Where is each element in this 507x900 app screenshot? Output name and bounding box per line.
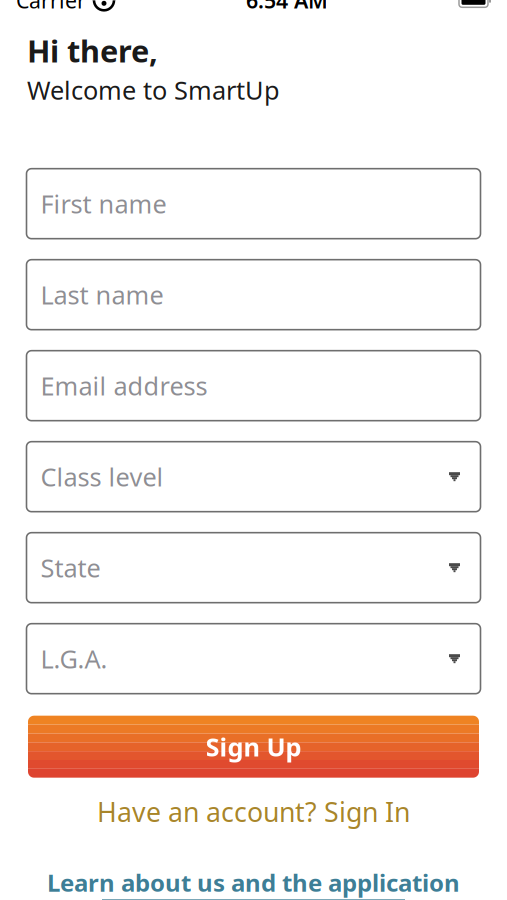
staticText: State — [40, 551, 100, 584]
staticText: Learn about us and the application — [47, 866, 460, 898]
staticText: Sign Up — [205, 730, 301, 763]
button[interactable]: State — [26, 533, 480, 603]
button[interactable]: Sign Up — [28, 716, 479, 778]
staticText: Welcome to SmartUp — [27, 73, 280, 107]
staticText: L.G.A. — [40, 642, 107, 675]
staticText: Have an account? Sign In — [97, 794, 410, 829]
button[interactable]: Class level — [26, 442, 480, 512]
staticText: Class level — [40, 460, 163, 493]
staticText: Carrier — [16, 0, 86, 14]
button[interactable]: L.G.A. — [26, 624, 480, 694]
staticText: Last name — [40, 278, 163, 311]
button[interactable]: Email address — [26, 351, 480, 421]
button[interactable]: First name — [26, 169, 480, 239]
staticText: Hi there, — [27, 30, 158, 71]
staticText: Email address — [40, 369, 207, 402]
button[interactable]: Last name — [26, 260, 480, 330]
button[interactable]: Learn about us and the application — [28, 869, 479, 899]
button[interactable]: Have an account? Sign In — [28, 797, 479, 827]
staticText: 6:54 AM — [246, 0, 328, 14]
staticText: First name — [40, 187, 166, 220]
